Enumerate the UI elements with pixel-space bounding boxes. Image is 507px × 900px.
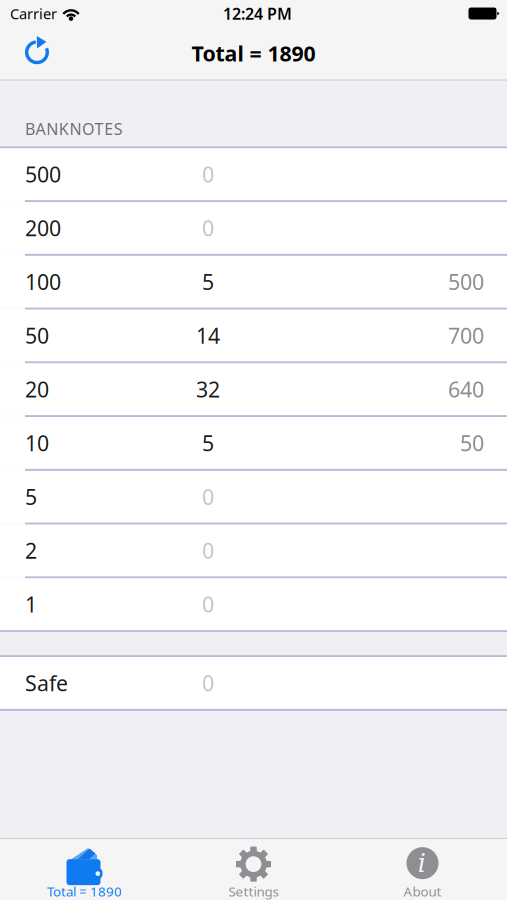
button[interactable]: 500 bbox=[0, 148, 507, 200]
staticText: Carrier bbox=[10, 4, 57, 23]
button[interactable]: 20 bbox=[0, 363, 507, 415]
button[interactable]: 1 bbox=[0, 578, 507, 630]
button[interactable]: Total = 1890 bbox=[0, 839, 169, 900]
staticText: 12:24 PM bbox=[223, 3, 292, 24]
button[interactable]: Refresh bbox=[0, 28, 63, 78]
staticText: 0 bbox=[202, 483, 214, 511]
staticText: 10 bbox=[25, 429, 49, 457]
button[interactable]: 10 bbox=[0, 417, 507, 469]
staticText: 1 bbox=[25, 590, 37, 618]
button[interactable]: Settings bbox=[169, 839, 338, 900]
button[interactable]: i bbox=[338, 839, 507, 900]
staticText: 0 bbox=[202, 160, 214, 188]
staticText: 2 bbox=[25, 536, 37, 565]
staticText: 500 bbox=[25, 160, 61, 188]
staticText: Total = 1890 bbox=[191, 39, 315, 67]
staticText: BANKNOTES bbox=[25, 118, 123, 139]
staticText: 5 bbox=[202, 268, 214, 296]
button[interactable]: 100 bbox=[0, 256, 507, 308]
staticText: 0 bbox=[202, 214, 214, 242]
staticText: 0 bbox=[202, 669, 214, 697]
staticText: 50 bbox=[460, 429, 484, 457]
staticText: 5 bbox=[25, 483, 37, 511]
staticText: i bbox=[417, 847, 426, 878]
staticText: 20 bbox=[25, 375, 49, 403]
staticText: 640 bbox=[448, 375, 484, 403]
button[interactable]: 2 bbox=[0, 525, 507, 576]
staticText: About bbox=[403, 882, 441, 900]
button[interactable]: 5 bbox=[0, 471, 507, 523]
staticText: 14 bbox=[196, 321, 220, 350]
staticText: Total = 1890 bbox=[47, 882, 122, 900]
staticText: 32 bbox=[196, 375, 220, 403]
button[interactable]: 50 bbox=[0, 310, 507, 361]
staticText: 50 bbox=[25, 321, 49, 350]
staticText: 0 bbox=[202, 536, 214, 565]
staticText: 0 bbox=[202, 590, 214, 618]
staticText: Safe bbox=[25, 669, 68, 697]
staticText: 5 bbox=[202, 429, 214, 457]
button[interactable]: 200 bbox=[0, 202, 507, 254]
staticText: Settings bbox=[228, 882, 278, 900]
button[interactable]: Safe bbox=[0, 657, 507, 709]
staticText: 500 bbox=[448, 268, 484, 296]
staticText: 700 bbox=[448, 321, 484, 350]
staticText: 200 bbox=[25, 214, 61, 242]
staticText: 100 bbox=[25, 268, 61, 296]
